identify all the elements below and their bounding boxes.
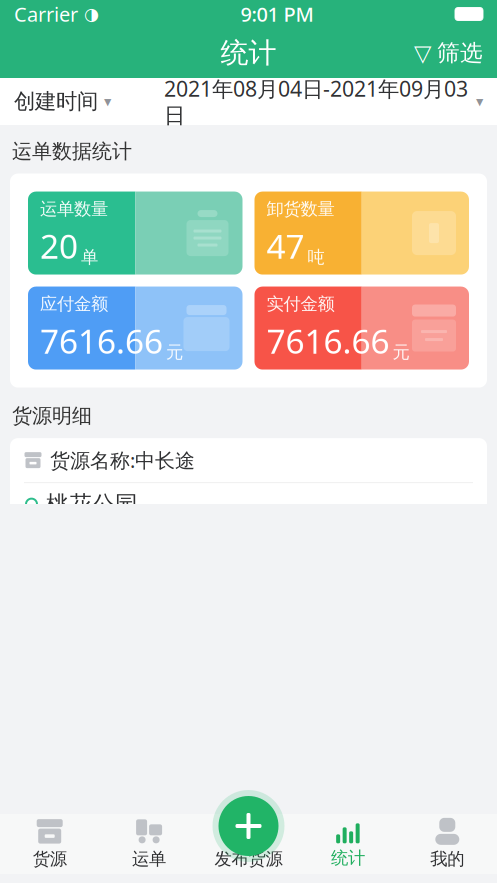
staticText: 实付金额	[266, 293, 334, 315]
staticText: 单	[81, 247, 98, 268]
staticText: 运单	[132, 848, 166, 870]
staticText: 筛选	[437, 39, 483, 67]
staticText: 20	[40, 224, 78, 268]
staticText: Carrier	[14, 1, 78, 27]
staticText: 7616.66	[40, 319, 163, 363]
staticText: 统计	[220, 36, 276, 70]
staticText: 元	[166, 342, 183, 363]
staticText: 发布货源	[214, 848, 282, 870]
staticText: 货源	[33, 848, 67, 870]
button[interactable]: 我的	[398, 814, 497, 874]
staticText: ▽	[414, 40, 431, 66]
staticText: 卸货数量	[266, 198, 334, 220]
staticText: 47	[266, 224, 304, 268]
button[interactable]: 运单	[99, 814, 199, 874]
button[interactable]: 货源	[0, 814, 99, 874]
button[interactable]: 2021年08月04日-2021年09月03日	[150, 78, 497, 125]
staticText: 统计	[331, 847, 365, 869]
staticText: 2021年08月04日-2021年09月03日	[164, 74, 468, 129]
staticText: 运单数量	[40, 198, 108, 220]
staticText: 运单数据统计	[12, 139, 132, 164]
staticText: 吨	[307, 247, 324, 268]
staticText: ▾	[104, 93, 111, 110]
button[interactable]: ▽	[400, 28, 497, 78]
staticText: 桃花公园	[46, 490, 138, 518]
staticText: 货源名称:中长途	[50, 447, 195, 473]
staticText: 9:01 PM	[240, 1, 313, 27]
button[interactable]: 发布货源	[210, 788, 286, 864]
staticText: 7616.66	[266, 319, 389, 363]
staticText: 我的	[430, 848, 464, 870]
staticText: ◑	[84, 4, 99, 24]
button[interactable]: 统计	[298, 814, 398, 874]
staticText: ▾	[476, 93, 483, 110]
staticText: 元	[392, 342, 409, 363]
staticText: 货源明细	[12, 404, 92, 428]
button[interactable]: 创建时间	[0, 78, 125, 125]
staticText: 应付金额	[40, 293, 108, 315]
staticText: 创建时间	[14, 88, 98, 115]
